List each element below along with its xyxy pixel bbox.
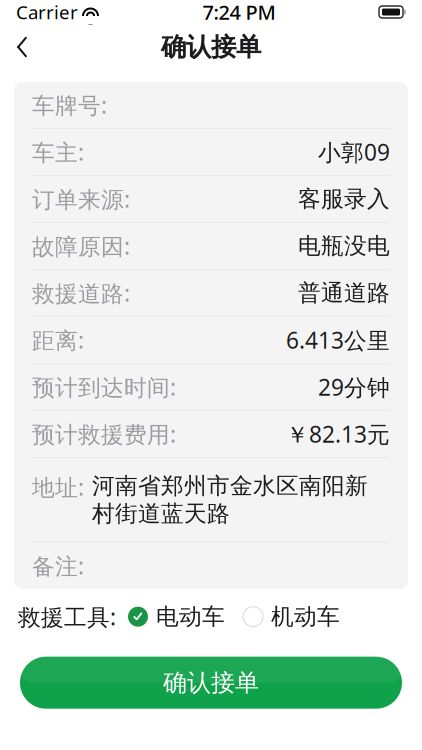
staticText: 7:24 PM — [202, 0, 275, 25]
staticText: 车主: — [32, 137, 84, 167]
staticText: 电瓶没电 — [298, 232, 390, 260]
staticText: 确认接单 — [163, 668, 259, 697]
staticText: 普通道路 — [298, 279, 390, 307]
staticText: 车牌号: — [32, 90, 107, 120]
staticText: 故障原因: — [32, 231, 130, 261]
button[interactable]: 机动车 — [243, 603, 340, 631]
staticText: Carrier — [16, 0, 78, 24]
button[interactable]: 电动车 — [128, 603, 225, 631]
staticText: 救援工具: — [18, 602, 116, 632]
staticText: 确认接单 — [161, 31, 261, 62]
staticText: 河南省郑州市金水区南阳新村街道蓝天路 — [92, 472, 368, 528]
staticText: 预计救援费用: — [32, 419, 176, 449]
staticText: 29分钟 — [318, 372, 390, 402]
staticText: 电动车 — [156, 603, 225, 631]
staticText — [77, 0, 83, 27]
button[interactable]: 确认接单 — [20, 657, 402, 709]
button[interactable]: 返回 — [0, 25, 44, 69]
staticText: 小郭09 — [318, 137, 390, 167]
staticText: 机动车 — [271, 603, 340, 631]
staticText: 距离: — [32, 325, 84, 355]
staticText: 备注: — [32, 551, 84, 581]
staticText: 预计到达时间: — [32, 372, 176, 402]
staticText: 6.413公里 — [286, 325, 390, 355]
staticText: ￥82.13元 — [286, 419, 390, 449]
staticText: 订单来源: — [32, 184, 130, 214]
staticText: 救援道路: — [32, 278, 130, 308]
staticText: 地址: — [32, 472, 84, 502]
staticText: 客服录入 — [298, 185, 390, 213]
